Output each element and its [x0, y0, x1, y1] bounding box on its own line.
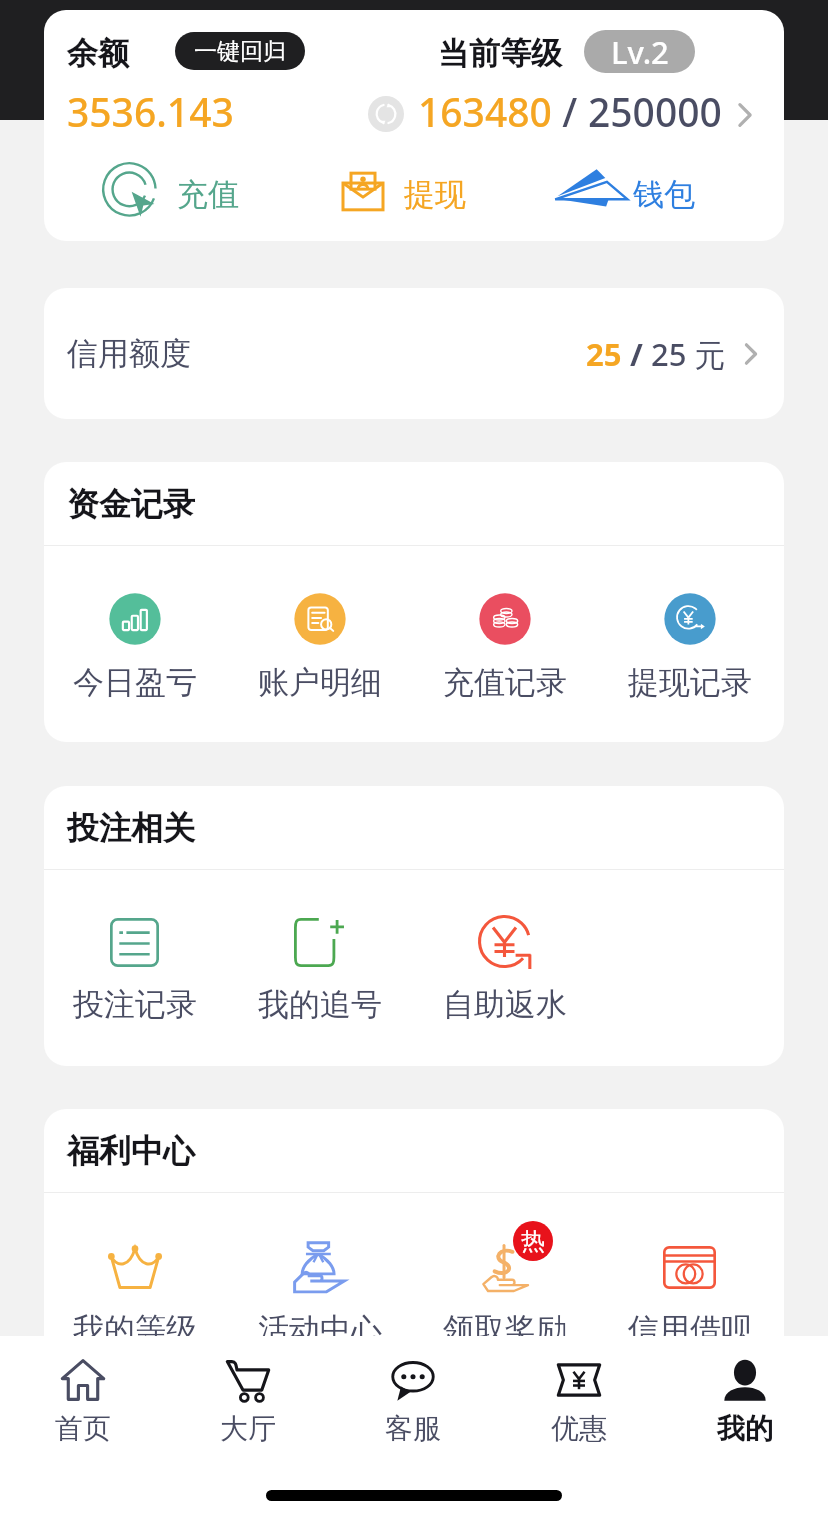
button[interactable]: 我的 — [662, 1336, 828, 1446]
staticText: 活动中心 — [258, 1310, 382, 1349]
button[interactable]: 客服 — [330, 1336, 496, 1446]
staticText: 我的等级 — [73, 1310, 197, 1349]
button[interactable]: 账户明细 — [227, 546, 412, 702]
staticText: 信用额度 — [67, 334, 191, 373]
button[interactable]: 提现记录 — [597, 546, 782, 702]
staticText: 当前等级 — [438, 34, 562, 73]
staticText: 一键回归 — [194, 37, 286, 66]
button[interactable]: 自助返水 — [412, 870, 597, 1024]
button[interactable]: 大厅 — [165, 1336, 330, 1446]
staticText: / — [552, 85, 588, 138]
staticText: 优惠 — [551, 1411, 607, 1446]
staticText: 资金记录 — [67, 484, 195, 524]
staticText: 投注记录 — [73, 985, 197, 1024]
button[interactable]: 信用额度 — [44, 288, 784, 419]
staticText: 账户明细 — [258, 663, 382, 702]
staticText: 热 — [521, 1226, 545, 1256]
staticText: 我的 — [717, 1411, 773, 1446]
staticText: 投注相关 — [67, 808, 195, 848]
button[interactable]: 信用借呗 — [597, 1193, 782, 1349]
staticText: 福利中心 — [67, 1131, 195, 1171]
button[interactable]: 首页 — [0, 1336, 165, 1446]
staticText: 钱包 — [633, 175, 695, 214]
button[interactable]: 优惠 — [496, 1336, 662, 1446]
button[interactable]: 钱包 — [552, 154, 695, 234]
staticText: 250000 — [588, 85, 722, 138]
staticText: 充值记录 — [443, 663, 567, 702]
staticText: 客服 — [385, 1411, 441, 1446]
staticText: 25 — [586, 333, 622, 375]
button[interactable]: 提现 — [338, 154, 466, 234]
button[interactable]: 充值 — [102, 154, 239, 234]
staticText: 自助返水 — [443, 985, 567, 1024]
button[interactable]: 投注记录 — [44, 870, 227, 1024]
staticText: 领取奖励 — [443, 1310, 567, 1349]
staticText: 今日盈亏 — [73, 663, 197, 702]
staticText: 余额 — [67, 34, 129, 73]
staticText: Lv.2 — [611, 31, 669, 73]
button[interactable]: 我的追号 — [227, 870, 412, 1024]
staticText: 163480 — [418, 85, 552, 138]
button[interactable]: 今日盈亏 — [44, 546, 227, 702]
button[interactable]: Refresh — [368, 96, 404, 132]
staticText: 提现记录 — [628, 663, 752, 702]
staticText: 25 元 — [651, 333, 726, 375]
button[interactable]: 活动中心 — [227, 1193, 412, 1349]
staticText: 提现 — [404, 175, 466, 214]
button[interactable]: 我的等级 — [44, 1193, 227, 1349]
staticText: 充值 — [177, 175, 239, 214]
button[interactable]: 热 — [412, 1193, 597, 1349]
staticText: 大厅 — [220, 1411, 276, 1446]
staticText: / — [622, 333, 651, 375]
staticText: 首页 — [55, 1411, 111, 1446]
staticText: 3536.143 — [67, 85, 234, 138]
button[interactable]: 一键回归 — [175, 32, 305, 70]
staticText: 我的追号 — [258, 985, 382, 1024]
button[interactable]: 充值记录 — [412, 546, 597, 702]
staticText: 信用借呗 — [628, 1310, 752, 1349]
